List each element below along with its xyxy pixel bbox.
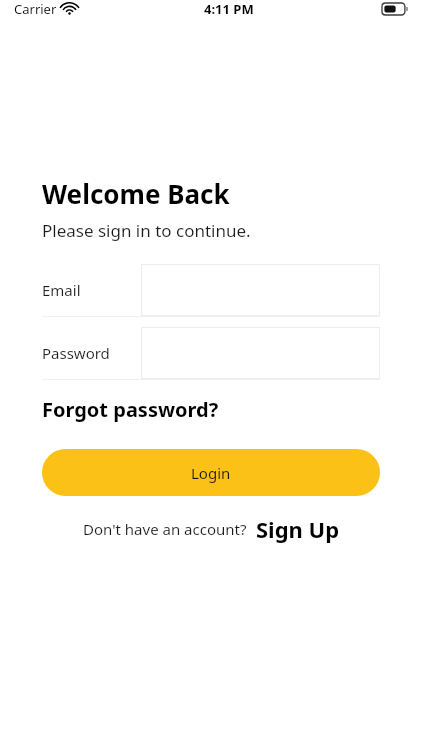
staticText: Sign Up: [256, 514, 340, 544]
button[interactable]: Email: [42, 264, 380, 316]
staticText: Please sign in to continue.: [42, 219, 251, 242]
staticText: Don't have an account?: [83, 519, 247, 539]
staticText: 4:11 PM: [204, 0, 254, 18]
staticText: Welcome Back: [42, 176, 230, 211]
staticText: Password: [42, 343, 110, 363]
button[interactable]: Forgot password?: [42, 396, 219, 423]
button[interactable]: Login: [42, 449, 380, 496]
staticText: Forgot password?: [42, 396, 219, 423]
button[interactable]: Password: [42, 327, 380, 379]
button[interactable]: Sign Up: [256, 514, 340, 544]
staticText: Login: [191, 463, 231, 483]
staticText: Email: [42, 280, 81, 300]
staticText: Carrier: [14, 0, 57, 18]
